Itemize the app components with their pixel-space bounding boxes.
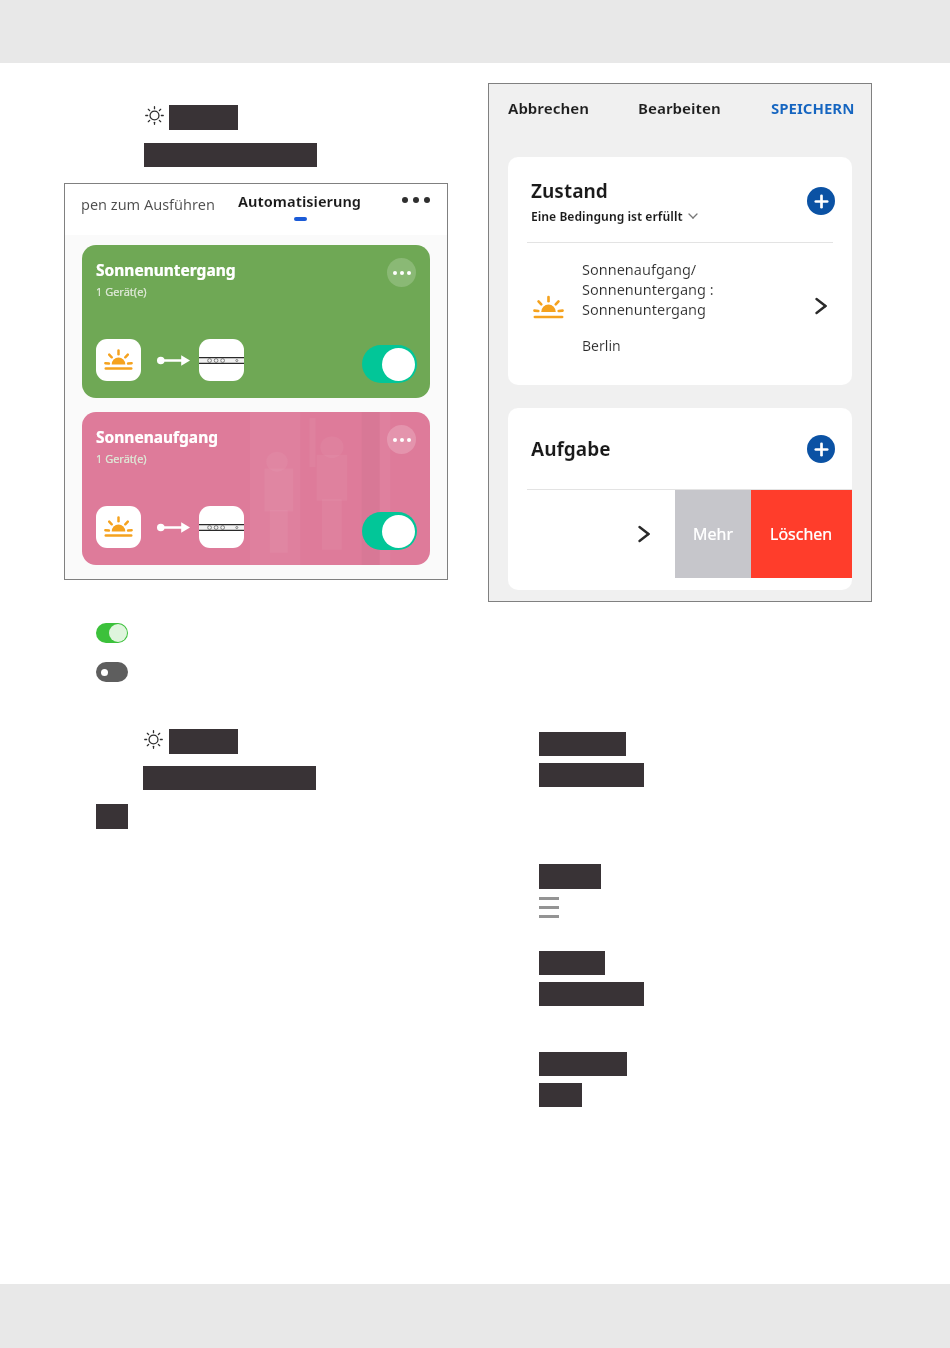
button[interactable]: Automatisierung aktivieren (362, 512, 417, 550)
staticText: 1 Gerät(e) (96, 284, 147, 299)
button[interactable]: Hinzufügen (807, 187, 835, 215)
button[interactable]: Sonnenaufgang (82, 412, 430, 565)
button[interactable]: Automatisierung aktivieren (362, 345, 417, 383)
button[interactable]: pen zum Ausführen (81, 191, 215, 214)
button[interactable]: Automatisierung (238, 191, 362, 221)
button[interactable]: Sonnenaufgang/ (530, 259, 827, 355)
button[interactable]: Bearbeiten (638, 98, 721, 118)
staticText: Aufgabe (531, 436, 611, 462)
button[interactable]: An (96, 623, 128, 643)
staticText: Mehr (693, 523, 734, 545)
button[interactable]: SPEICHERN (771, 98, 855, 118)
staticText: Berlin (582, 336, 621, 355)
staticText: Sonnenuntergang (582, 299, 706, 319)
staticText: Zustand (531, 178, 608, 204)
staticText: Sonnenaufgang/ (582, 259, 697, 279)
staticText: Sonnenaufgang (96, 426, 219, 447)
staticText: 1 Gerät(e) (96, 451, 147, 466)
button[interactable]: Sonnenuntergang (82, 245, 430, 398)
button[interactable]: Mehr (675, 490, 751, 578)
button[interactable]: Mehr Optionen (387, 258, 416, 287)
button[interactable]: Eine Bedingung ist erfüllt (531, 208, 697, 224)
staticText: Eine Bedingung ist erfüllt (531, 208, 683, 224)
button[interactable]: Mehr (402, 197, 430, 203)
button[interactable]: Mehr Optionen (387, 425, 416, 454)
button[interactable]: Löschen (751, 490, 852, 578)
staticText: Automatisierung (238, 191, 362, 211)
button[interactable]: Hinzufügen (807, 435, 835, 463)
staticText: Löschen (770, 523, 833, 545)
button[interactable]: Abbrechen (508, 98, 589, 118)
staticText: Sonnenuntergang (96, 259, 236, 280)
button[interactable]: Aus (96, 662, 128, 682)
staticText: Sonnenuntergang : (582, 279, 714, 299)
